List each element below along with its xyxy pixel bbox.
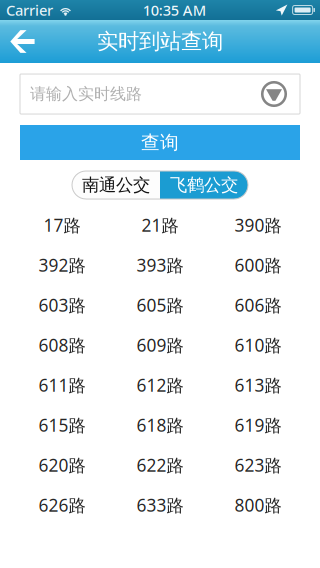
staticText: 609路 (136, 333, 183, 356)
staticText: 612路 (136, 373, 183, 396)
staticText: 飞鹤公交 (170, 174, 238, 196)
staticText: 请输入实时线路 (30, 84, 142, 104)
button[interactable]: 633路 (111, 485, 209, 525)
staticText: 605路 (136, 293, 183, 316)
button[interactable]: 飞鹤公交 (160, 171, 248, 199)
button[interactable]: 622路 (111, 445, 209, 485)
staticText: 611路 (38, 373, 85, 396)
button[interactable]: Back (0, 20, 49, 63)
staticText: 615路 (38, 413, 85, 436)
button[interactable]: 608路 (13, 325, 111, 365)
button[interactable]: 612路 (111, 365, 209, 405)
button[interactable]: 619路 (209, 405, 307, 445)
staticText: 633路 (136, 493, 183, 516)
staticText: 393路 (136, 253, 183, 276)
staticText: 603路 (38, 293, 85, 316)
button[interactable]: 615路 (13, 405, 111, 445)
button[interactable]: 605路 (111, 285, 209, 325)
button[interactable]: 392路 (13, 245, 111, 285)
staticText: 390路 (234, 213, 281, 236)
button[interactable]: 南通公交 (72, 171, 160, 199)
staticText: Carrier (6, 0, 53, 20)
staticText: 622路 (136, 453, 183, 476)
button[interactable]: 390路 (209, 205, 307, 245)
staticText: 618路 (136, 413, 183, 436)
staticText: 600路 (234, 253, 281, 276)
button[interactable]: 请输入实时线路 (20, 74, 300, 114)
button[interactable]: 17路 (13, 205, 111, 245)
button[interactable]: 626路 (13, 485, 111, 525)
button[interactable]: 606路 (209, 285, 307, 325)
button[interactable]: 618路 (111, 405, 209, 445)
button[interactable]: 609路 (111, 325, 209, 365)
button[interactable]: 613路 (209, 365, 307, 405)
button[interactable]: 600路 (209, 245, 307, 285)
staticText: 620路 (38, 453, 85, 476)
button[interactable]: 620路 (13, 445, 111, 485)
staticText: 623路 (234, 453, 281, 476)
staticText: 800路 (234, 493, 281, 516)
button[interactable]: 800路 (209, 485, 307, 525)
staticText: 610路 (234, 333, 281, 356)
staticText: 实时到站查询 (97, 28, 223, 55)
button[interactable]: 610路 (209, 325, 307, 365)
staticText: 606路 (234, 293, 281, 316)
staticText: 21路 (141, 213, 178, 236)
staticText: 南通公交 (82, 174, 150, 196)
staticText: 626路 (38, 493, 85, 516)
staticText: 613路 (234, 373, 281, 396)
staticText: 10:35 AM (143, 0, 206, 20)
staticText: 608路 (38, 333, 85, 356)
button[interactable]: 603路 (13, 285, 111, 325)
button[interactable]: 21路 (111, 205, 209, 245)
button[interactable]: 611路 (13, 365, 111, 405)
staticText: 619路 (234, 413, 281, 436)
staticText: 查询 (141, 131, 179, 154)
button[interactable]: 623路 (209, 445, 307, 485)
button[interactable]: 查询 (20, 125, 300, 160)
staticText: 17路 (43, 213, 80, 236)
button[interactable]: 393路 (111, 245, 209, 285)
staticText: 392路 (38, 253, 85, 276)
